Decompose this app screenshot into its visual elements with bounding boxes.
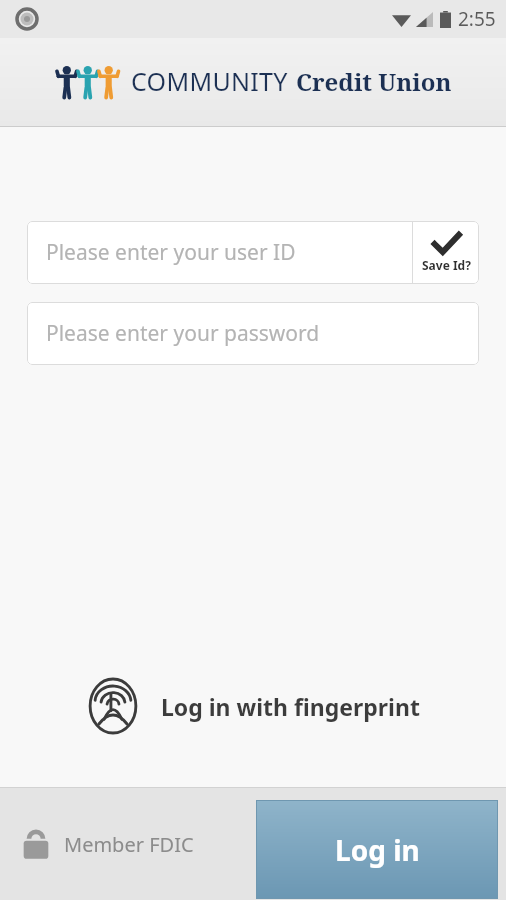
- staticText: 2:55: [458, 6, 496, 32]
- staticText: Please enter your password: [46, 319, 320, 348]
- button[interactable]: Save Id: [413, 221, 479, 284]
- staticText: COMMUNITY: [131, 64, 288, 98]
- button[interactable]: Log in with fingerprint: [0, 676, 506, 736]
- staticText: Log in: [335, 831, 420, 869]
- staticText: Please enter your user ID: [46, 238, 296, 267]
- button[interactable]: Please enter your user ID: [27, 221, 412, 284]
- staticText: Log in with fingerprint: [161, 691, 420, 722]
- button[interactable]: Member FDIC: [22, 828, 194, 860]
- button[interactable]: Please enter your password: [27, 302, 479, 365]
- staticText: Member FDIC: [64, 831, 194, 858]
- staticText: Save Id?: [422, 257, 471, 273]
- button[interactable]: Log in: [256, 800, 498, 899]
- staticText: Credit Union: [296, 65, 452, 98]
